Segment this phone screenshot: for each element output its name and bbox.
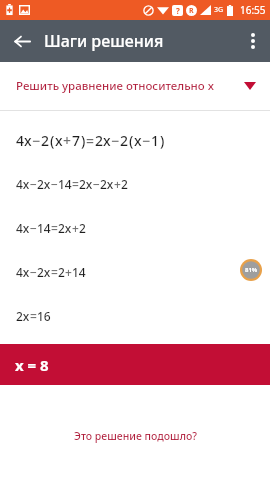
staticText: Шаги решения	[44, 30, 164, 52]
staticText: −	[142, 131, 151, 150]
staticText: −	[51, 176, 58, 192]
staticText: −	[30, 220, 37, 236]
staticText: 16	[37, 308, 51, 324]
staticText: Это решение подошло?	[74, 429, 197, 443]
staticText: +	[72, 220, 79, 236]
button[interactable]: More options	[236, 20, 270, 62]
staticText: −	[93, 176, 100, 192]
staticText: 2	[79, 220, 86, 236]
staticText: 2x	[100, 176, 114, 192]
staticText: +	[114, 176, 121, 192]
staticText: −	[30, 264, 37, 280]
staticText: 81%	[245, 266, 258, 274]
staticText: 2	[41, 131, 50, 150]
staticText: 14	[58, 176, 72, 192]
staticText: 1	[151, 131, 160, 150]
staticText: (	[129, 131, 134, 150]
staticText: +	[65, 264, 72, 280]
staticText: 4x	[16, 220, 30, 236]
staticText: Решить уравнение относительно x	[16, 78, 214, 94]
staticText: =	[51, 220, 58, 236]
button[interactable]: Решить уравнение относительно x	[0, 62, 270, 110]
staticText: 2x	[37, 176, 51, 192]
staticText: 2	[120, 131, 129, 150]
staticText: )	[81, 131, 86, 150]
staticText: 16:55	[240, 3, 266, 17]
staticText: +	[63, 131, 72, 150]
staticText: x	[55, 131, 63, 150]
staticText: 2	[58, 264, 65, 280]
staticText: 2x	[37, 264, 51, 280]
staticText: −	[32, 131, 41, 150]
staticText: −	[111, 131, 120, 150]
staticText: 4x	[16, 264, 30, 280]
staticText: =	[30, 308, 37, 324]
staticText: x	[134, 131, 142, 150]
button[interactable]: Back	[0, 20, 44, 62]
staticText: =	[72, 176, 79, 192]
staticText: )	[160, 131, 165, 150]
staticText: 3G	[214, 5, 224, 15]
staticText: ?	[176, 5, 180, 16]
button[interactable]: Это решение подошло?	[0, 421, 270, 451]
staticText: 2x	[79, 176, 93, 192]
staticText: 4x	[16, 176, 30, 192]
staticText: R	[189, 6, 194, 16]
button[interactable]: x = 8	[0, 344, 270, 385]
staticText: 14	[72, 264, 86, 280]
staticText: =	[51, 264, 58, 280]
staticText: 2	[121, 176, 128, 192]
staticText: =	[86, 131, 95, 150]
staticText: 7	[72, 131, 81, 150]
staticText: 2x	[16, 308, 30, 324]
staticText: 2x	[95, 131, 111, 150]
staticText: 2x	[58, 220, 72, 236]
staticText: −	[30, 176, 37, 192]
staticText: 4x	[16, 131, 32, 150]
staticText: (	[50, 131, 55, 150]
staticText: 14	[37, 220, 51, 236]
staticText: x = 8	[15, 355, 49, 375]
